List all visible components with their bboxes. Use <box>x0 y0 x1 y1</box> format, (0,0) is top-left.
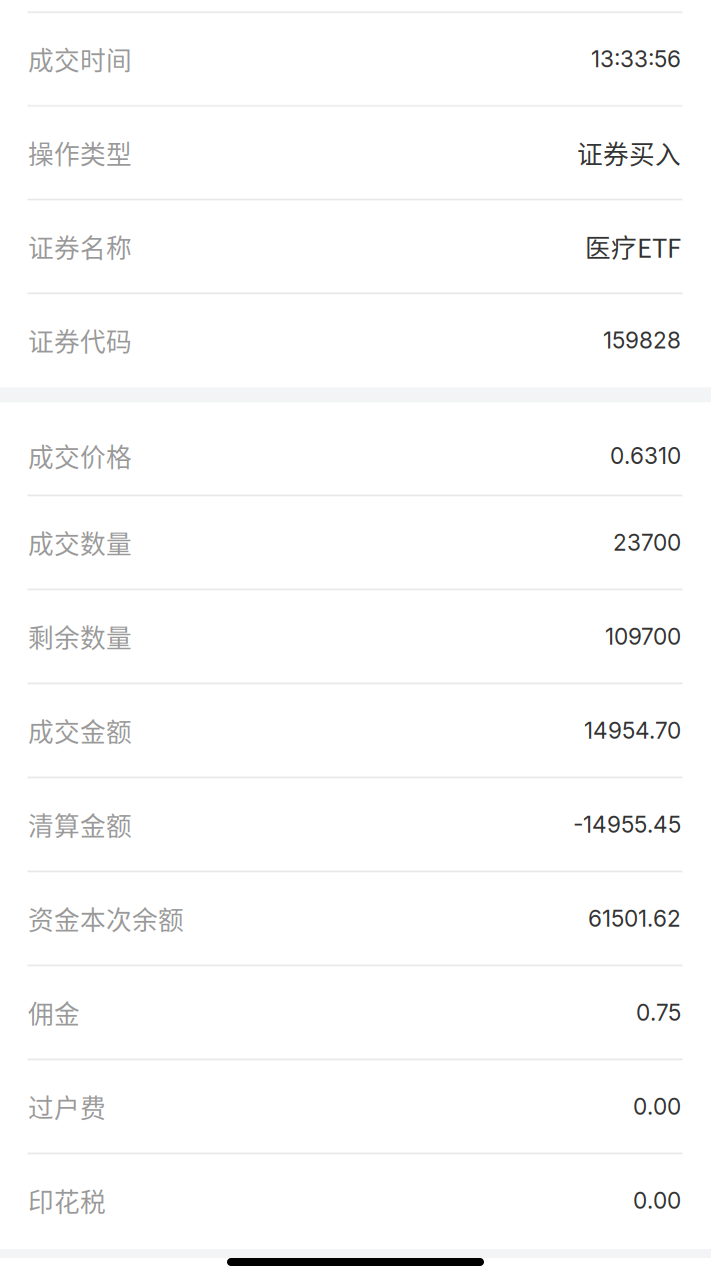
staticText: 成交价格 <box>28 437 132 474</box>
staticText: 13:33:56 <box>591 45 681 73</box>
staticText: 109700 <box>605 623 681 650</box>
staticText: 印花税 <box>28 1182 106 1219</box>
staticText: 剩余数量 <box>28 618 132 655</box>
button[interactable]: 剩余数量 <box>0 591 711 682</box>
staticText: 61501.62 <box>588 905 681 932</box>
button[interactable]: 过户费 <box>0 1061 711 1152</box>
staticText: 成交数量 <box>28 524 132 561</box>
button[interactable]: 佣金 <box>0 967 711 1058</box>
staticText: 过户费 <box>28 1088 106 1125</box>
staticText: 0.75 <box>636 999 681 1026</box>
button[interactable]: 印花税 <box>0 1155 711 1246</box>
staticText: 资金本次余额 <box>28 900 184 937</box>
button[interactable]: 资金本次余额 <box>0 873 711 964</box>
staticText: 0.00 <box>633 1187 681 1214</box>
button[interactable]: 清算金额 <box>0 779 711 870</box>
button[interactable]: 成交金额 <box>0 685 711 776</box>
button[interactable]: 证券代码 <box>0 295 711 386</box>
staticText: -14955.45 <box>573 811 681 838</box>
staticText: 证券代码 <box>28 322 132 359</box>
staticText: 操作类型 <box>28 134 132 171</box>
staticText: 159828 <box>603 326 681 354</box>
staticText: 23700 <box>613 529 681 556</box>
button[interactable]: 成交时间 <box>0 13 711 105</box>
staticText: 医疗ETF <box>585 228 681 265</box>
staticText: 佣金 <box>28 994 80 1031</box>
staticText: 0.6310 <box>610 442 681 469</box>
button[interactable]: 证券名称 <box>0 201 711 292</box>
staticText: 0.00 <box>633 1093 681 1120</box>
staticText: 成交时间 <box>28 40 132 78</box>
button[interactable]: 成交数量 <box>0 497 711 588</box>
staticText: 成交金额 <box>28 712 132 749</box>
staticText: 证券买入 <box>577 134 681 171</box>
staticText: 14954.70 <box>584 717 681 744</box>
staticText: 证券名称 <box>28 228 132 265</box>
staticText: 清算金额 <box>28 806 132 843</box>
button[interactable]: 操作类型 <box>0 107 711 198</box>
button[interactable]: 成交价格 <box>0 402 711 494</box>
